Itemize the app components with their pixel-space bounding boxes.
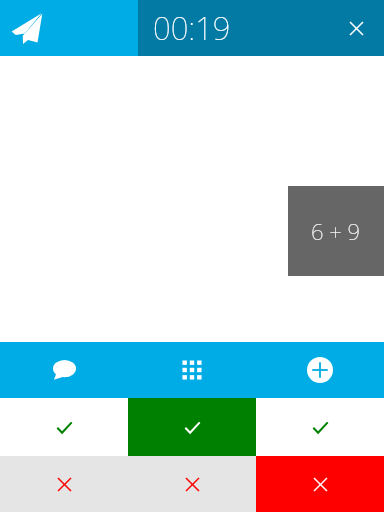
button[interactable]: 6 + 9 <box>288 186 384 276</box>
button[interactable]: Apps <box>128 342 256 398</box>
button[interactable]: Close <box>336 8 376 48</box>
staticText: 6 + 9 <box>311 216 361 246</box>
button[interactable]: Accept <box>256 398 384 456</box>
button[interactable]: Send <box>7 7 49 49</box>
button[interactable]: Reject <box>0 456 128 512</box>
button[interactable]: Accept <box>0 398 128 456</box>
button[interactable]: Chat <box>0 342 128 398</box>
button[interactable]: Add <box>256 342 384 398</box>
staticText: 00:19 <box>153 7 231 49</box>
button[interactable]: Reject <box>256 456 384 512</box>
button[interactable]: Accept <box>128 398 256 456</box>
button[interactable]: Reject <box>128 456 256 512</box>
